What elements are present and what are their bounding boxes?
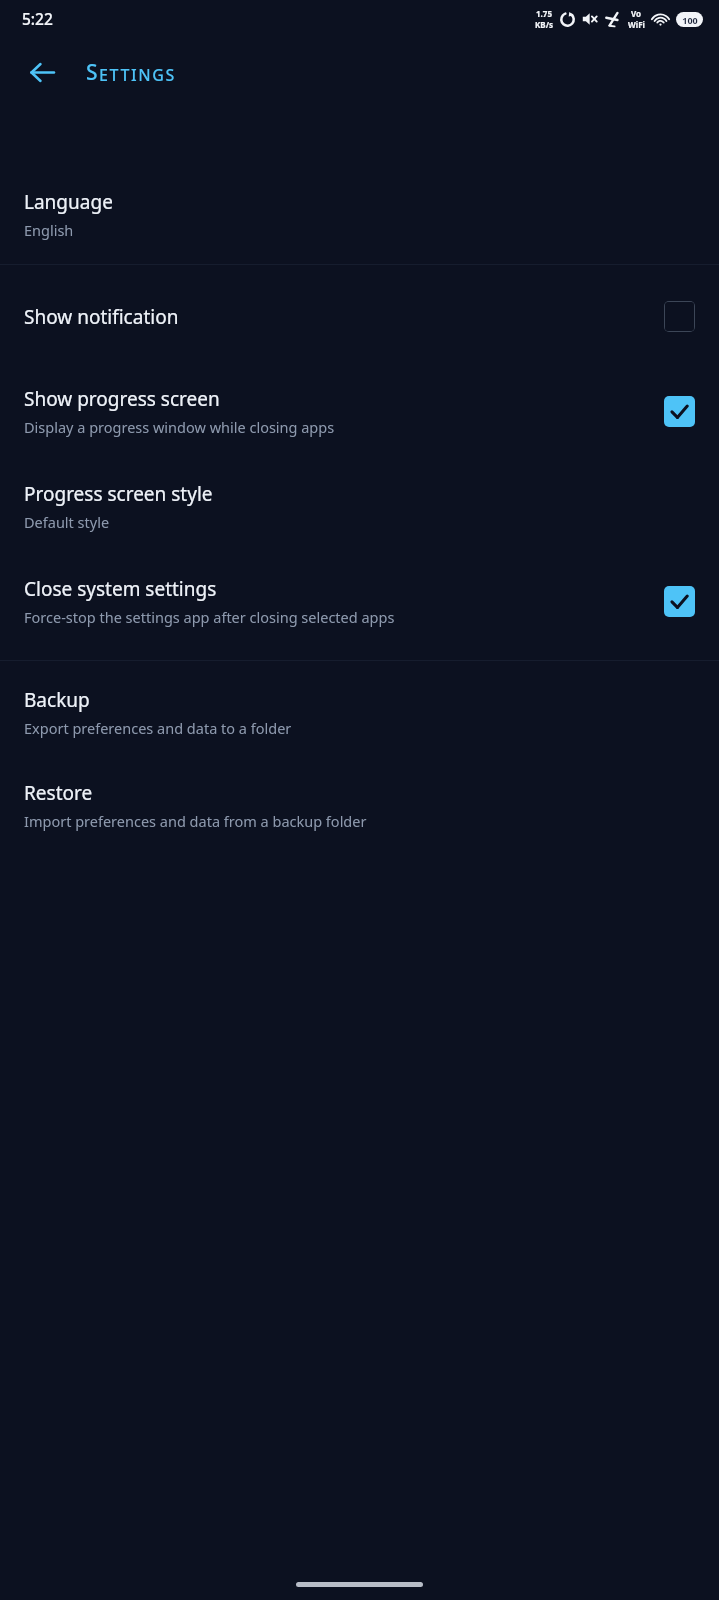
staticText: Restore [24, 780, 93, 806]
staticText: Backup [24, 687, 90, 713]
staticText: Vo [631, 8, 642, 19]
staticText: 5:22 [22, 8, 53, 29]
staticText: S [86, 58, 99, 87]
button[interactable]: Restore [0, 772, 719, 839]
staticText: Default style [24, 512, 110, 532]
button[interactable]: Progress screen style [0, 473, 719, 540]
staticText: ETTINGS [99, 64, 176, 86]
button[interactable]: Checked [664, 396, 695, 427]
staticText: Show progress screen [24, 386, 220, 412]
button[interactable]: Unchecked [664, 301, 695, 332]
staticText: WiFi [628, 19, 645, 30]
staticText: Show notification [24, 304, 179, 330]
staticText: KB/s [535, 19, 553, 30]
staticText: 100 [682, 14, 698, 26]
button[interactable]: Close system settings [0, 568, 719, 635]
staticText: Language [24, 189, 113, 215]
button[interactable]: Language [0, 169, 719, 264]
button[interactable]: Backup [0, 679, 719, 746]
button[interactable]: Back [18, 48, 66, 96]
staticText: Display a progress window while closing … [24, 417, 335, 437]
staticText: English [24, 220, 74, 240]
staticText: Export preferences and data to a folder [24, 718, 292, 738]
button[interactable]: Show progress screen [0, 378, 719, 445]
button[interactable]: Checked [664, 586, 695, 617]
staticText: Progress screen style [24, 481, 213, 507]
staticText: Force-stop the settings app after closin… [24, 607, 395, 627]
staticText: Import preferences and data from a backu… [24, 811, 367, 831]
staticText: Close system settings [24, 576, 217, 602]
staticText: 1.75 [536, 8, 552, 19]
button[interactable]: Show notification [0, 285, 719, 350]
